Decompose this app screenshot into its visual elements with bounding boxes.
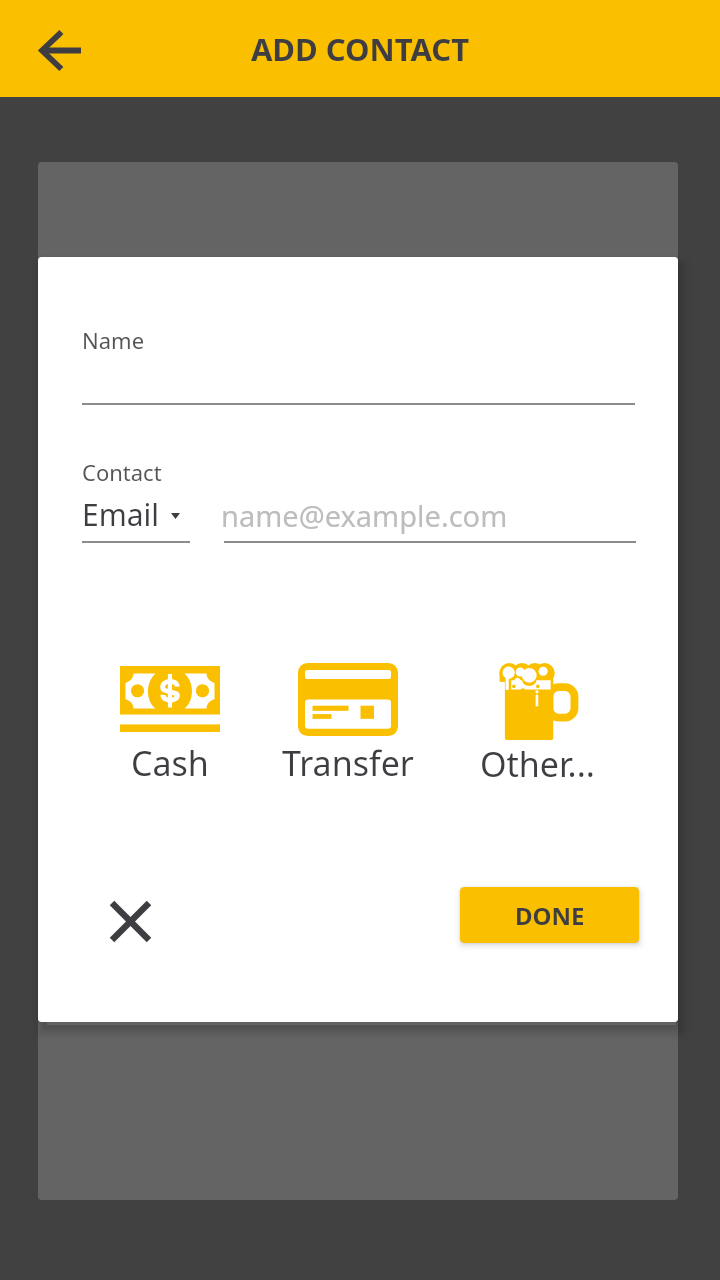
button[interactable]: Close [95, 886, 165, 956]
button[interactable]: Other... [457, 664, 617, 787]
staticText: DONE [515, 899, 585, 932]
staticText: Transfer [282, 740, 414, 786]
staticText: Contact [82, 457, 162, 487]
button[interactable]: Name field [82, 319, 635, 407]
button[interactable]: Cash [90, 666, 250, 786]
staticText: Name [82, 325, 145, 355]
button[interactable]: DONE [460, 887, 639, 943]
button[interactable]: Transfer [268, 663, 428, 786]
button[interactable]: Back [21, 11, 99, 89]
staticText: ADD CONTACT [0, 28, 720, 70]
staticText: Email [82, 494, 160, 535]
staticText: Cash [131, 740, 209, 786]
button[interactable]: Email [82, 487, 180, 541]
staticText: Other... [480, 741, 595, 787]
staticText: name@example.com [221, 496, 508, 535]
